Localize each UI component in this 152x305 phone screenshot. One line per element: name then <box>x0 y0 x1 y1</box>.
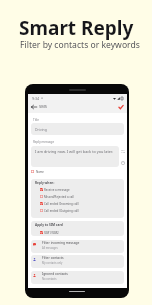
staticText: Apply to SIM card <box>35 223 63 227</box>
staticText: Call ended (Incoming call) <box>44 202 79 206</box>
staticText: Filter by contacts or keywords <box>20 39 140 51</box>
staticText: 9:34 <box>32 96 40 101</box>
button[interactable]: Character count <box>120 148 126 154</box>
button[interactable]: SIM1/SIM2 <box>40 229 124 236</box>
staticText: 45/ 140 <box>121 148 126 154</box>
staticText: Title <box>33 118 39 122</box>
button[interactable]: Insert emoji <box>119 159 126 166</box>
button[interactable]: Missed/Rejected a call <box>40 193 124 200</box>
staticText: SIM1/SIM2 <box>44 231 59 235</box>
button[interactable]: Call ended (Incoming call) <box>40 200 124 207</box>
button[interactable]: Ignored contacts <box>31 271 124 284</box>
staticText: Filter contacts <box>42 256 64 260</box>
staticText: Name <box>36 170 44 174</box>
staticText: No contacts <box>42 277 57 281</box>
staticText: Receive a message <box>44 188 70 192</box>
staticText: SMS <box>39 104 48 109</box>
staticText: Call ended (Outgoing call) <box>44 209 79 213</box>
staticText: Reply when: <box>35 181 55 185</box>
staticText: I am driving now. I will get back to you… <box>35 149 113 154</box>
staticText: Reply message <box>33 140 55 144</box>
staticText: Smart Reply <box>19 15 134 41</box>
button[interactable]: Name <box>31 168 44 175</box>
staticText: Missed/Rejected a call <box>44 195 74 199</box>
button[interactable]: Filter incoming message <box>31 240 124 253</box>
staticText: My contacts only <box>42 261 63 265</box>
staticText: Filter incoming message <box>42 241 80 245</box>
button[interactable]: Back <box>28 101 39 112</box>
button[interactable]: Driving <box>31 123 124 135</box>
staticText: Ignored contacts <box>42 272 68 276</box>
staticText: Driving <box>35 127 47 132</box>
button[interactable]: I am driving now. I will get back to you… <box>31 146 119 167</box>
button[interactable]: Save <box>114 101 127 112</box>
button[interactable]: Filter contacts <box>31 255 124 268</box>
staticText: All messages <box>42 246 58 250</box>
button[interactable]: Call ended (Outgoing call) <box>40 207 124 214</box>
button[interactable]: Receive a message <box>40 186 124 193</box>
